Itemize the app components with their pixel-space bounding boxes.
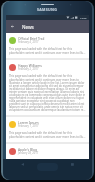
staticText: February 4, 2017 <box>18 40 39 44</box>
staticText: SAMSUNG <box>37 7 58 12</box>
staticText: Happy Williams <box>18 63 42 67</box>
button[interactable]: Apple's Blog <box>6 144 89 159</box>
staticText: February 1, 2017 <box>18 124 39 128</box>
staticText: Lorem Ipsum <box>18 120 39 124</box>
staticText: This page was loaded with the default te… <box>9 74 86 111</box>
staticText: This page was loaded with the default te… <box>9 131 86 138</box>
button[interactable]: Lorem Ipsum <box>6 117 89 142</box>
button[interactable]: Back <box>6 20 19 33</box>
button[interactable]: Happy Williams <box>6 60 89 115</box>
staticText: January 28, 2017 <box>18 151 39 155</box>
staticText: News <box>22 24 34 30</box>
staticText: February 2, 2017 <box>18 67 39 71</box>
staticText: 12:45 <box>80 16 87 19</box>
staticText: This page was loaded with the default te… <box>9 47 86 54</box>
staticText: Official Brief Trail <box>18 36 45 40</box>
staticText: Apple's Blog <box>18 147 37 151</box>
button[interactable]: Official Brief Trail <box>6 33 89 58</box>
